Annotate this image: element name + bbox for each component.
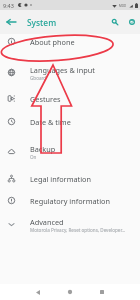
staticText: Legal information [30,174,91,184]
button[interactable]: Search [105,10,125,34]
staticText: Backup [30,144,56,154]
staticText: Gboard [30,75,47,81]
button[interactable]: Languages & input [0,58,140,87]
staticText: Advanced [30,217,64,227]
staticText: Regulatory information [30,196,110,206]
staticText: 9:43 [3,2,14,9]
button[interactable]: Home [60,284,80,300]
button[interactable]: Date & time [0,110,140,133]
button[interactable]: Help [125,10,139,34]
staticText: Gestures [30,94,61,104]
staticText: Languages & input [30,65,95,75]
staticText: System [27,17,57,28]
button[interactable]: Regulatory information [0,189,140,212]
staticText: About phone [30,37,75,47]
button[interactable]: Back [28,284,48,300]
staticText: Motorola Privacy, Reset options, Develop… [30,227,126,233]
staticText: Date & time [30,117,71,127]
button[interactable]: Gestures [0,87,140,110]
button[interactable]: About phone [0,30,140,53]
staticText: On [30,154,37,160]
button[interactable]: Back [0,10,22,34]
staticText: MOD [119,4,127,8]
button[interactable]: Legal information [0,167,140,190]
button[interactable]: Backup [0,137,140,166]
button[interactable]: Advanced [0,210,140,239]
button[interactable]: Recents [92,284,112,300]
